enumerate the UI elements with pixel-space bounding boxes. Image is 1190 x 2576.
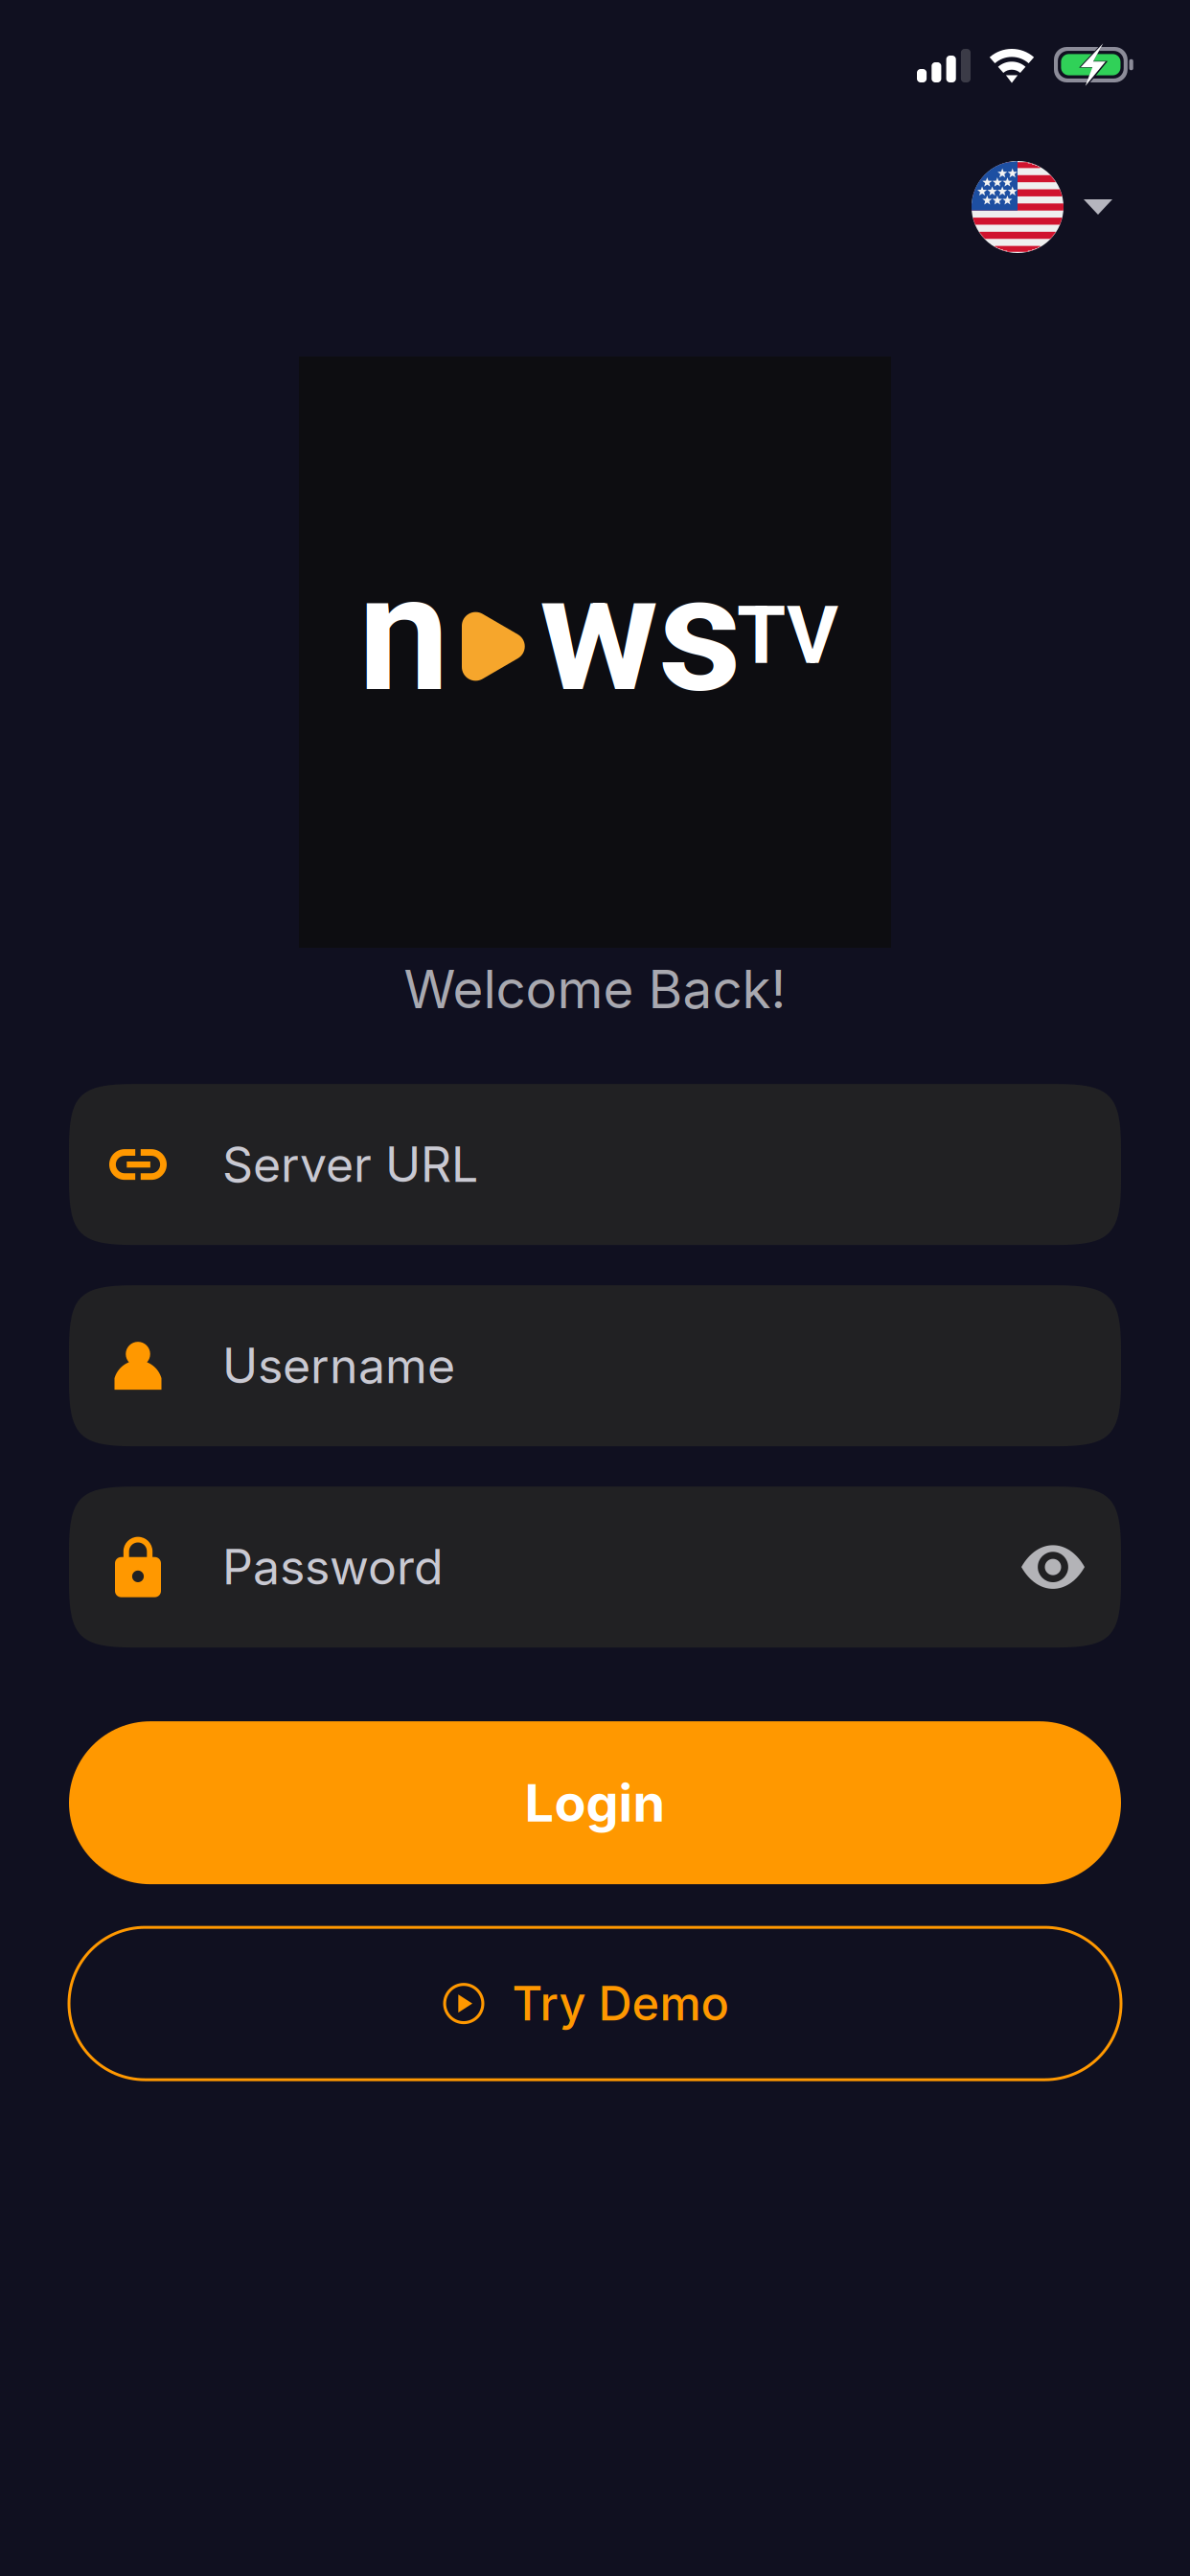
button[interactable]: Login	[69, 1721, 1121, 1884]
staticText: Password	[222, 1538, 444, 1596]
button[interactable]: Select language	[972, 161, 1112, 253]
staticText: Welcome Back!	[404, 957, 786, 1021]
staticText: Try Demo	[512, 1975, 729, 2032]
staticText: Login	[525, 1771, 665, 1834]
button[interactable]: Show password	[985, 1486, 1121, 1647]
staticText: ws	[539, 539, 742, 729]
button[interactable]: Try Demo	[69, 1927, 1121, 2080]
staticText: TV	[737, 589, 838, 682]
staticText: Server URL	[222, 1136, 478, 1194]
staticText: n	[358, 539, 449, 729]
staticText: Username	[222, 1337, 455, 1395]
